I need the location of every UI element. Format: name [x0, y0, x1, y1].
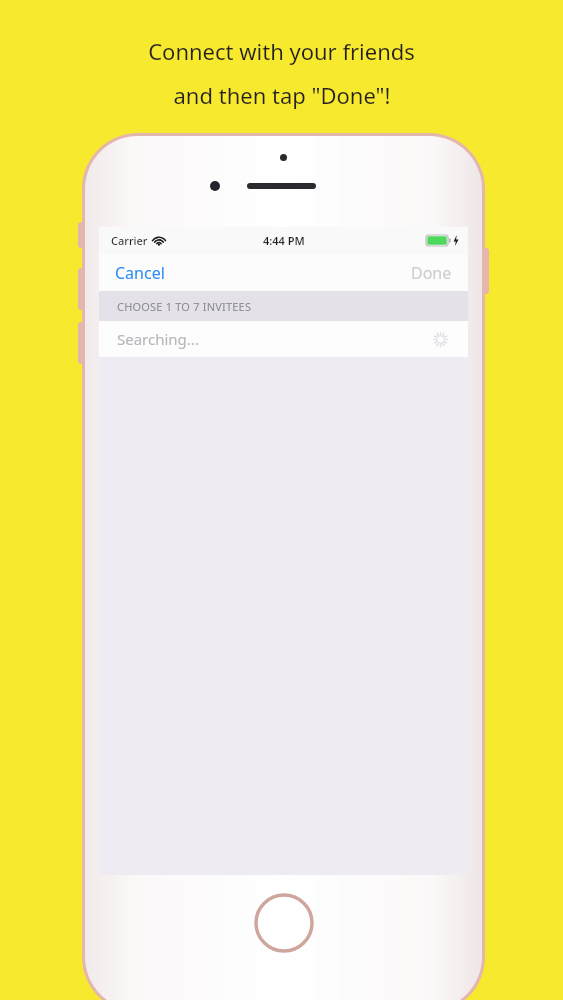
staticText: and then tap "Done"! — [173, 80, 391, 110]
staticText: 4:44 PM — [263, 233, 305, 248]
staticText: Searching... — [117, 329, 199, 349]
button[interactable]: Done — [401, 254, 462, 291]
staticText: Done — [411, 262, 452, 284]
staticText: CHOOSE 1 TO 7 INVITEES — [117, 299, 252, 314]
staticText: Connect with your friends — [148, 36, 415, 66]
staticText: Carrier — [111, 233, 148, 248]
button[interactable]: Searching... — [99, 321, 468, 357]
staticText: Cancel — [115, 262, 165, 284]
button[interactable]: Cancel — [105, 254, 175, 291]
button[interactable]: Home — [254, 893, 314, 953]
